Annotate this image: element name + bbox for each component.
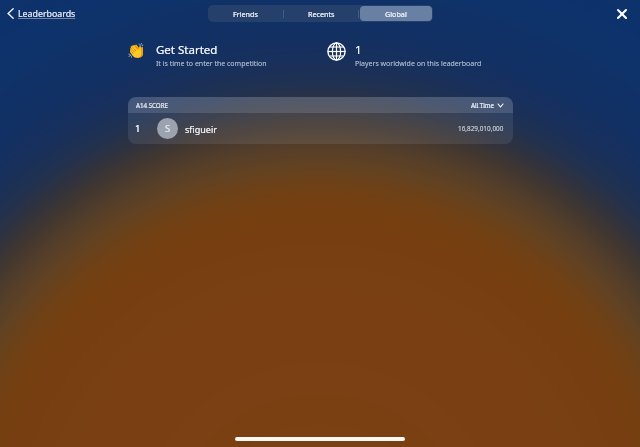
staticText: All Time	[471, 101, 495, 109]
button[interactable]: Close	[611, 3, 632, 24]
staticText: Leaderboards	[18, 8, 76, 20]
staticText: 16,829,010,000	[458, 124, 504, 133]
staticText: It is time to enter the competition	[156, 59, 267, 69]
staticText: Players worldwide on this leaderboard	[355, 59, 482, 69]
staticText: 1	[135, 122, 141, 135]
button[interactable]: Friends	[209, 6, 282, 21]
button[interactable]: All Time	[471, 101, 503, 109]
staticText: A14 SCORE	[136, 101, 168, 109]
staticText: S	[165, 122, 171, 135]
staticText: Global	[385, 9, 407, 19]
staticText: 1	[355, 42, 362, 58]
staticText: Recents	[308, 9, 335, 19]
staticText: Friends	[233, 9, 258, 19]
staticText: 👏	[127, 42, 146, 60]
staticText: sfigueir	[185, 123, 217, 135]
button[interactable]: Recents	[285, 6, 357, 21]
button[interactable]: Leaderboards	[7, 5, 76, 22]
staticText: Get Started	[156, 42, 218, 58]
button[interactable]: Global	[360, 6, 432, 21]
button[interactable]: 1	[135, 113, 504, 144]
